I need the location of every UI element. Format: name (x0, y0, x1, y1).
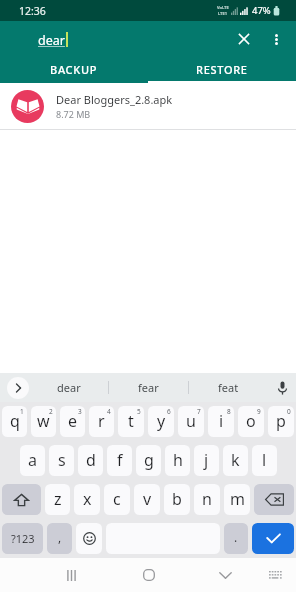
staticText: c (113, 488, 121, 510)
staticText: q (10, 410, 20, 432)
staticText: x (83, 488, 92, 510)
staticText: o (246, 410, 256, 432)
staticText: 8.72 MB (56, 108, 91, 120)
button[interactable]: u (178, 406, 204, 437)
staticText: 12:36 (19, 4, 46, 18)
button[interactable]: Recent apps (44, 558, 98, 592)
staticText: z (54, 488, 62, 510)
staticText: 9 (257, 407, 261, 416)
button[interactable]: d (78, 445, 103, 476)
button[interactable]: b (164, 484, 190, 515)
staticText: , (58, 529, 62, 545)
staticText: p (276, 410, 286, 432)
button[interactable]: c (104, 484, 130, 515)
staticText: 8 (227, 407, 231, 416)
staticText: BACKUP (50, 62, 98, 77)
button[interactable]: o (238, 406, 264, 437)
staticText: k (231, 449, 240, 471)
staticText: 7 (197, 407, 201, 416)
button[interactable]: Dear Bloggers_2.8.apk (0, 83, 296, 130)
staticText: e (68, 410, 78, 432)
button[interactable]: . (224, 523, 248, 554)
button[interactable]: r (89, 406, 114, 437)
staticText: RESTORE (196, 62, 248, 77)
staticText: a (28, 449, 37, 471)
staticText: w (37, 410, 50, 432)
button[interactable]: More options (257, 21, 296, 57)
staticText: VoLTE (217, 5, 229, 11)
button[interactable]: y (148, 406, 174, 437)
staticText: 6 (167, 407, 171, 416)
staticText: LTE1 (218, 11, 228, 17)
staticText: 3 (78, 407, 82, 416)
button[interactable]: z (45, 484, 70, 515)
button[interactable]: Hide keyboard (255, 558, 295, 592)
staticText: l (262, 449, 267, 471)
staticText: feat (218, 380, 239, 395)
staticText: fear (138, 380, 159, 395)
staticText: . (234, 529, 238, 545)
button[interactable]: h (165, 445, 190, 476)
staticText: u (186, 410, 196, 432)
staticText: dear (38, 32, 65, 49)
button[interactable]: f (107, 445, 132, 476)
button[interactable]: BACKUP (0, 57, 148, 81)
staticText: s (58, 449, 66, 471)
button[interactable]: t (118, 406, 144, 437)
button[interactable]: j (194, 445, 219, 476)
button[interactable]: x (74, 484, 100, 515)
staticText: ?123 (11, 531, 35, 546)
button[interactable]: g (136, 445, 161, 476)
staticText: g (144, 449, 154, 471)
staticText: v (143, 488, 152, 510)
button[interactable]: dear (30, 373, 108, 402)
button[interactable]: q (2, 406, 27, 437)
staticText: f (117, 449, 123, 471)
button[interactable]: Emoji (76, 523, 102, 554)
staticText: 5 (137, 407, 141, 416)
button[interactable]: Clear search (227, 21, 261, 57)
button[interactable]: n (194, 484, 220, 515)
staticText: 0 (287, 407, 291, 416)
staticText: b (172, 488, 182, 510)
button[interactable]: p (268, 406, 294, 437)
button[interactable]: e (60, 406, 85, 437)
staticText: d (86, 449, 96, 471)
button[interactable]: k (223, 445, 248, 476)
staticText: dear (57, 380, 81, 395)
button[interactable]: feat (189, 373, 268, 402)
button[interactable]: s (49, 445, 74, 476)
staticText: n (202, 488, 212, 510)
staticText: m (230, 488, 245, 510)
staticText: 2 (49, 407, 53, 416)
staticText: 1 (20, 407, 24, 416)
button[interactable]: ?123 (2, 523, 43, 554)
button[interactable]: RESTORE (148, 57, 296, 81)
button[interactable]: a (20, 445, 45, 476)
button[interactable]: Enter (252, 523, 294, 554)
button[interactable]: i (208, 406, 234, 437)
staticText: i (219, 410, 224, 432)
button[interactable]: fear (109, 373, 188, 402)
staticText: Dear Bloggers_2.8.apk (56, 92, 173, 107)
button[interactable]: Home (122, 558, 176, 592)
button[interactable]: l (252, 445, 277, 476)
button[interactable]: Back (198, 558, 252, 592)
staticText: 4 (107, 407, 111, 416)
staticText: j (204, 449, 209, 471)
staticText: y (157, 410, 166, 432)
staticText: r (98, 410, 105, 432)
button[interactable]: Backspace (254, 484, 294, 515)
button[interactable]: Expand suggestions (0, 373, 30, 402)
button[interactable]: Shift (2, 484, 41, 515)
button[interactable]: , (47, 523, 72, 554)
button[interactable]: v (134, 484, 160, 515)
staticText: h (173, 449, 183, 471)
button[interactable]: w (31, 406, 56, 437)
button[interactable]: Voice input (268, 373, 296, 402)
staticText: 47% (252, 4, 271, 17)
button[interactable]: m (224, 484, 250, 515)
staticText: t (128, 410, 134, 432)
